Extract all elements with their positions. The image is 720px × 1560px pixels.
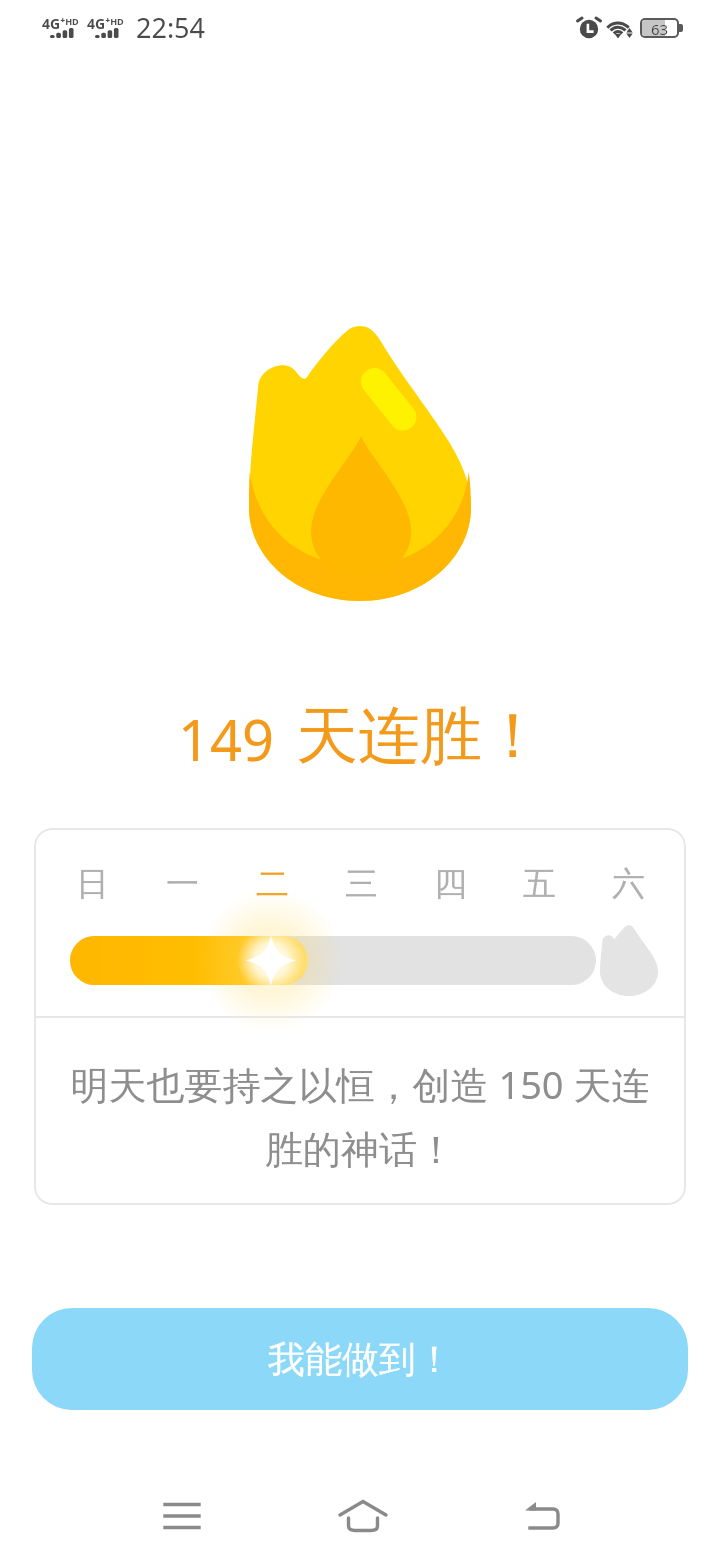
staticText: 五 [523, 863, 556, 905]
button[interactable]: Back [454, 1472, 636, 1560]
staticText: 22:54 [136, 9, 206, 46]
staticText: 4G⁺ᴴᴰ [42, 14, 79, 33]
staticText: 63 [651, 20, 669, 35]
button[interactable]: 二 [227, 863, 317, 905]
staticText: 149 [178, 701, 275, 777]
staticText: 天连胜！ [296, 697, 544, 775]
staticText: 4G⁺ᴴᴰ [87, 14, 124, 33]
staticText: 四 [434, 863, 467, 905]
button[interactable]: Recent apps [91, 1472, 272, 1560]
staticText: 一 [166, 863, 199, 905]
staticText: 我能做到！ [268, 1336, 453, 1383]
button[interactable]: 三 [317, 863, 406, 905]
button[interactable]: 我能做到！ [32, 1308, 688, 1410]
staticText: 三 [345, 863, 378, 905]
button[interactable]: Home [272, 1472, 454, 1560]
button[interactable]: 五 [495, 863, 584, 905]
button[interactable]: 四 [406, 863, 495, 905]
button[interactable]: 六 [584, 863, 673, 905]
button[interactable]: 日 [47, 863, 137, 905]
staticText: 二 [256, 863, 289, 905]
button[interactable]: 一 [137, 863, 227, 905]
staticText: 六 [612, 863, 645, 905]
staticText: 日 [76, 863, 109, 905]
staticText: 明天也要持之以恒，创造 150 天连胜的神话！ [63, 1058, 657, 1174]
